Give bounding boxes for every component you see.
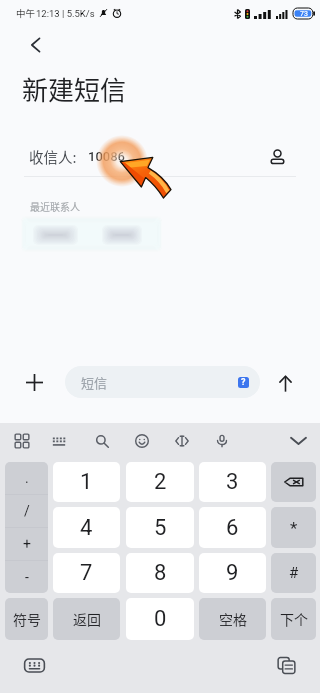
staticText: 1 — [80, 469, 93, 495]
button[interactable]: Choose contact — [262, 142, 292, 172]
staticText: 7 — [80, 560, 93, 586]
button[interactable]: / — [5, 495, 48, 527]
staticText: 收信人: — [29, 146, 77, 167]
button[interactable]: 返回 — [53, 598, 120, 640]
staticText: # — [289, 564, 299, 582]
button[interactable]: 2 — [126, 462, 194, 502]
button[interactable]: 5 — [126, 507, 194, 548]
button[interactable]: * — [271, 507, 316, 548]
button[interactable]: Clipboard — [272, 651, 300, 679]
button[interactable]: Keyboard type — [45, 427, 73, 455]
button[interactable]: Message info — [238, 377, 249, 388]
staticText: 4 — [80, 515, 93, 541]
button[interactable]: 1 — [53, 462, 120, 502]
button[interactable]: Hide keyboard — [284, 427, 312, 455]
button[interactable]: 6 — [199, 507, 266, 548]
staticText: 下个 — [280, 609, 308, 629]
staticText: 3 — [226, 469, 239, 495]
button[interactable]: Add attachment — [20, 368, 49, 397]
button[interactable]: 下个 — [271, 598, 316, 640]
button[interactable]: Layouts — [8, 427, 36, 455]
button[interactable]: Search — [88, 427, 116, 455]
staticText: 短信 — [81, 373, 108, 392]
button[interactable]: 9 — [199, 553, 266, 593]
staticText: * — [290, 518, 298, 538]
button[interactable]: Back — [22, 31, 50, 59]
staticText: 8 — [154, 560, 167, 586]
staticText: 9 — [226, 560, 239, 586]
button[interactable]: 短信 — [65, 366, 260, 398]
button[interactable]: Text cursor tools — [168, 427, 196, 455]
staticText: 73 — [300, 10, 308, 18]
button[interactable]: 0 — [126, 598, 194, 640]
button[interactable]: 空格 — [199, 598, 266, 640]
staticText: 6 — [226, 515, 239, 541]
button[interactable]: # — [271, 553, 316, 593]
button[interactable]: 符号 — [5, 598, 48, 640]
button[interactable]: Emoji — [128, 427, 156, 455]
button[interactable]: - — [5, 561, 48, 593]
button[interactable]: 8 — [126, 553, 194, 593]
staticText: 5 — [154, 515, 167, 541]
button[interactable]: 3 — [199, 462, 266, 502]
staticText: 新建短信 — [22, 70, 127, 108]
staticText: ? — [241, 377, 246, 388]
staticText: 符号 — [13, 609, 41, 629]
staticText: 空格 — [219, 609, 247, 629]
staticText: 0 — [154, 606, 167, 632]
staticText: . — [25, 470, 29, 486]
staticText: + — [23, 536, 31, 552]
button[interactable]: + — [5, 528, 48, 560]
button[interactable]: 4 — [53, 507, 120, 548]
button[interactable]: Switch input method — [20, 651, 48, 679]
button[interactable]: Voice input — [208, 427, 236, 455]
staticText: / — [24, 503, 30, 519]
staticText: 中午 — [16, 6, 36, 20]
staticText: 返回 — [73, 609, 101, 629]
staticText: 12:13 | 5.5K/s — [36, 8, 95, 19]
staticText: - — [25, 569, 29, 585]
button[interactable]: 7 — [53, 553, 120, 593]
staticText: 2 — [154, 469, 167, 495]
button[interactable]: 收信人: — [29, 139, 296, 173]
staticText: 10086 — [88, 149, 125, 164]
button[interactable]: . — [5, 462, 48, 494]
staticText: 最近联系人 — [30, 199, 80, 213]
button[interactable]: Send — [271, 369, 300, 398]
button[interactable]: Backspace — [271, 462, 316, 502]
